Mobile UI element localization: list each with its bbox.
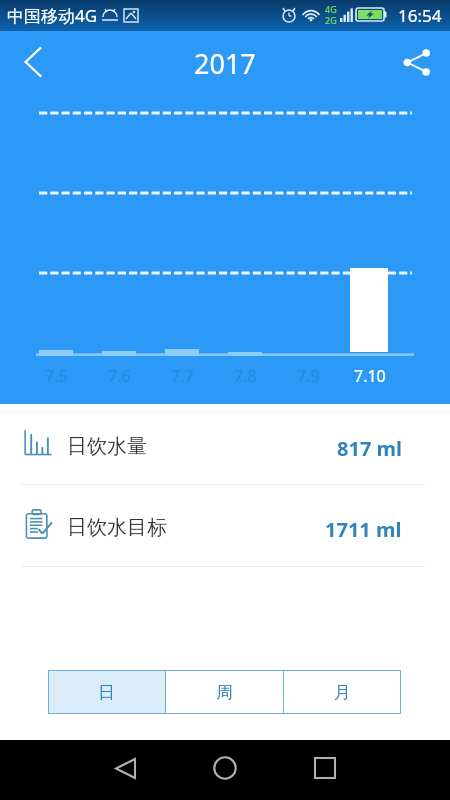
staticText: 日饮水目标 bbox=[67, 515, 167, 540]
staticText: 16:54 bbox=[398, 4, 442, 27]
staticText: 日饮水量 bbox=[67, 434, 147, 459]
staticText: 2G bbox=[325, 14, 337, 26]
staticText: 7.7 bbox=[171, 365, 194, 387]
staticText: 月 bbox=[334, 682, 351, 703]
button[interactable]: Recents bbox=[301, 744, 349, 792]
button[interactable]: 日 bbox=[48, 670, 165, 714]
staticText: 7.10 bbox=[354, 365, 386, 387]
staticText: 日 bbox=[98, 682, 115, 703]
staticText: 中国移动4G bbox=[7, 4, 98, 27]
button[interactable]: 日饮水量 bbox=[0, 404, 450, 485]
staticText: 7.5 bbox=[45, 365, 68, 387]
staticText: 2017 bbox=[194, 45, 256, 82]
button[interactable]: 月 bbox=[284, 670, 401, 714]
staticText: 周 bbox=[216, 682, 233, 703]
button[interactable]: Home bbox=[201, 744, 249, 792]
staticText: 4G bbox=[325, 3, 337, 15]
staticText: 7.9 bbox=[297, 365, 320, 387]
button[interactable]: Back bbox=[12, 40, 56, 84]
staticText: 1711 ml bbox=[325, 516, 402, 543]
staticText: 817 ml bbox=[337, 435, 402, 462]
staticText: 7.6 bbox=[108, 365, 131, 387]
button[interactable]: Back bbox=[101, 744, 149, 792]
button[interactable]: 日饮水目标 bbox=[0, 485, 450, 567]
button[interactable]: Share bbox=[394, 40, 438, 84]
staticText: 7.8 bbox=[234, 365, 257, 387]
button[interactable]: 周 bbox=[166, 670, 283, 714]
